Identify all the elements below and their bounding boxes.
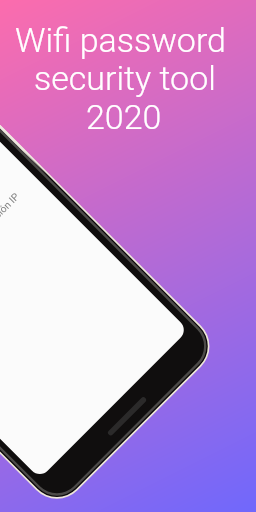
- staticText: 2020: [86, 97, 162, 137]
- staticText: security tool: [34, 58, 216, 98]
- staticText: Wifi password: [15, 20, 226, 60]
